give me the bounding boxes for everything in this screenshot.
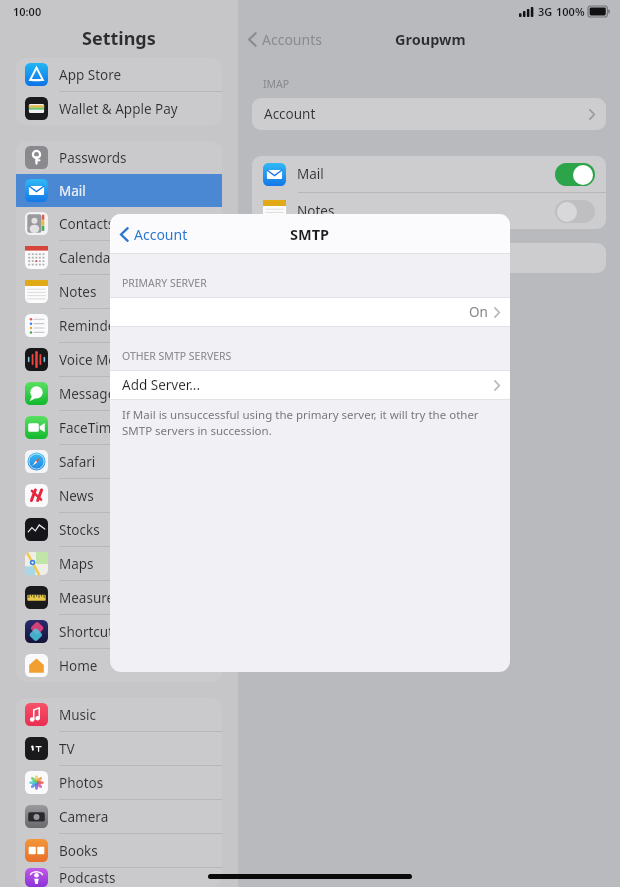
button[interactable]: Mail xyxy=(252,156,606,192)
staticText: SMTP xyxy=(290,224,330,244)
button[interactable]: Wallet & Apple Pay xyxy=(16,92,222,125)
staticText: FaceTime xyxy=(59,419,119,437)
staticText: Stocks xyxy=(59,521,100,539)
button[interactable]: Calendar xyxy=(16,241,222,274)
button[interactable]: Shortcuts xyxy=(16,615,222,648)
staticText: Messages xyxy=(59,385,122,403)
staticText: Measure xyxy=(59,589,115,607)
staticText: Notes xyxy=(59,283,97,301)
staticText: OTHER SMTP SERVERS xyxy=(122,349,232,363)
staticText: Music xyxy=(59,706,97,724)
staticText: Mail xyxy=(59,182,86,200)
button[interactable]: Mail xyxy=(16,174,222,207)
staticText: If Mail is unsuccessful using the primar… xyxy=(122,407,496,438)
button[interactable]: Accounts xyxy=(248,30,322,49)
staticText: IMAP xyxy=(263,77,290,91)
staticText: Home xyxy=(59,657,98,675)
staticText: Camera xyxy=(59,808,109,826)
staticText: Notes xyxy=(297,202,555,220)
button[interactable]: App Store xyxy=(16,58,222,91)
staticText: Reminders xyxy=(59,317,128,335)
button[interactable]: Stocks xyxy=(16,513,222,546)
button[interactable]: Safari xyxy=(16,445,222,478)
staticText: Shortcuts xyxy=(59,623,120,641)
button[interactable]: Home xyxy=(16,649,222,682)
staticText: Maps xyxy=(59,555,94,573)
staticText: Mail xyxy=(297,165,555,183)
button[interactable]: Maps xyxy=(16,547,222,580)
button[interactable]: Notes xyxy=(16,275,222,308)
button[interactable]: On xyxy=(110,298,510,326)
button[interactable]: Account xyxy=(252,98,606,130)
button[interactable]: Contacts xyxy=(16,207,222,240)
staticText: Account xyxy=(264,105,316,123)
staticText: App Store xyxy=(59,66,122,84)
staticText: On xyxy=(469,303,488,321)
button[interactable]: Account xyxy=(120,225,188,244)
button[interactable]: Reminders xyxy=(16,309,222,342)
staticText: Add Server... xyxy=(122,376,201,394)
staticText: 10:00 xyxy=(13,4,42,19)
button[interactable]: Notes off xyxy=(555,200,595,223)
staticText: 100% xyxy=(556,4,585,19)
staticText: Passwords xyxy=(59,149,127,167)
staticText: Accounts xyxy=(262,30,322,49)
button[interactable]: Books xyxy=(16,834,222,867)
staticText: 3G xyxy=(538,4,553,19)
staticText: Account xyxy=(134,225,188,244)
button[interactable]: Add Server... xyxy=(110,371,510,399)
staticText: Groupwm xyxy=(395,29,466,49)
button[interactable]: Podcasts xyxy=(16,868,222,887)
button[interactable]: Mail on xyxy=(555,163,595,186)
staticText: PRIMARY SERVER xyxy=(122,276,207,290)
staticText: Books xyxy=(59,842,98,860)
staticText: Contacts xyxy=(59,215,115,233)
staticText: Calendar xyxy=(59,249,116,267)
staticText: Voice Memos xyxy=(59,351,144,369)
button[interactable]: Measure xyxy=(16,581,222,614)
button[interactable]: TV xyxy=(16,732,222,765)
button[interactable]: Music xyxy=(16,698,222,731)
button[interactable]: Passwords xyxy=(16,141,222,174)
button[interactable]: News xyxy=(16,479,222,512)
staticText: Settings xyxy=(82,26,156,51)
button[interactable]: FaceTime xyxy=(16,411,222,444)
button[interactable]: Camera xyxy=(16,800,222,833)
staticText: Photos xyxy=(59,774,104,792)
staticText: Safari xyxy=(59,453,96,471)
button[interactable]: Notes xyxy=(252,193,606,229)
button[interactable]: Messages xyxy=(16,377,222,410)
staticText: Podcasts xyxy=(59,869,116,887)
button[interactable]: Voice Memos xyxy=(16,343,222,376)
staticText: News xyxy=(59,487,94,505)
staticText: TV xyxy=(59,740,75,758)
button[interactable]: Photos xyxy=(16,766,222,799)
staticText: Wallet & Apple Pay xyxy=(59,100,178,118)
